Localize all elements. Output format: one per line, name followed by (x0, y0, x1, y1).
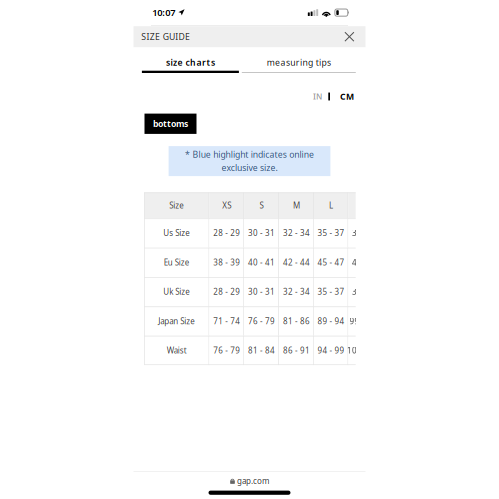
staticText: SIZE GUIDE (141, 31, 190, 43)
staticText: measuring tips (267, 57, 331, 68)
staticText: 81 - 84 (248, 345, 275, 356)
staticText: L (329, 200, 333, 211)
staticText: Waist (167, 345, 187, 356)
staticText: 71 - 74 (213, 316, 240, 326)
button[interactable]: size charts (142, 52, 239, 73)
staticText: 104 - 109 (347, 345, 384, 356)
staticText: 45 - 47 (318, 257, 345, 268)
staticText: 38 - 40 (352, 227, 379, 238)
staticText: Japan Size (158, 316, 195, 326)
staticText: exclusive size. (221, 162, 277, 174)
staticText: 38 - 40 (352, 286, 379, 297)
staticText: 99 - 104 (350, 316, 382, 326)
staticText: 10:07 (152, 6, 175, 19)
staticText: 30 - 31 (248, 227, 275, 238)
staticText: 35 - 37 (318, 286, 345, 297)
staticText: bottoms (153, 118, 188, 130)
staticText: 30 - 31 (248, 286, 275, 297)
staticText: S (259, 200, 263, 211)
button[interactable]: measuring tips (242, 52, 356, 73)
button[interactable]: IN (313, 91, 322, 102)
staticText: 86 - 91 (283, 345, 310, 356)
staticText: CM (340, 91, 354, 102)
staticText: 40 - 41 (248, 257, 275, 268)
staticText: Eu Size (164, 257, 190, 268)
staticText: XS (222, 200, 231, 211)
staticText: Size (169, 200, 184, 211)
staticText: size charts (166, 57, 215, 68)
staticText: * Blue highlight indicates online (185, 148, 314, 160)
staticText: 32 - 34 (283, 286, 310, 297)
staticText: 42 - 44 (283, 257, 310, 268)
button[interactable]: gap.com address (133, 473, 365, 489)
staticText: 89 - 94 (318, 316, 345, 326)
staticText: 94 - 99 (318, 345, 345, 356)
staticText: 76 - 79 (248, 316, 275, 326)
staticText: 48 - 50 (352, 257, 379, 268)
staticText: Uk Size (163, 286, 190, 297)
staticText: 28 - 29 (213, 227, 240, 238)
staticText: 38 - 39 (213, 257, 240, 268)
staticText: M (293, 200, 300, 211)
staticText: 76 - 79 (213, 345, 240, 356)
staticText: 28 - 29 (213, 286, 240, 297)
staticText: IN (313, 91, 322, 102)
staticText: 32 - 34 (283, 227, 310, 238)
button[interactable]: bottoms (144, 114, 196, 134)
button[interactable]: CM (340, 91, 354, 102)
button[interactable]: Close size guide (133, 26, 365, 47)
staticText: gap.com (237, 476, 269, 486)
staticText: Us Size (163, 227, 190, 238)
staticText: 35 - 37 (318, 227, 345, 238)
staticText: 81 - 86 (283, 316, 310, 326)
